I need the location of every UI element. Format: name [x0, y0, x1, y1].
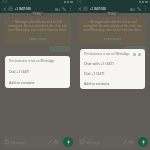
staticText: Today	[33, 12, 42, 16]
staticText: Message	[11, 140, 25, 144]
staticText: • Messages and calls are end-to-end encr…	[7, 20, 68, 32]
staticText: This business is not on WhatsApp	[84, 52, 130, 56]
button[interactable]: Call	[61, 6, 67, 12]
button[interactable]: Back	[2, 6, 8, 12]
button[interactable]: Video call	[129, 6, 135, 12]
staticText: Learn more	[104, 37, 122, 41]
button[interactable]: More options	[143, 6, 148, 11]
button[interactable]: Voice message	[63, 137, 73, 147]
button[interactable]: Message	[2, 136, 61, 148]
button[interactable]: Back	[77, 6, 83, 12]
staticText: This business is not on WhatsApp	[9, 59, 55, 63]
staticText: 9:41	[2, 0, 8, 4]
staticText: • Messages and calls are end-to-end encr…	[82, 20, 143, 32]
staticText: +1 (347) 555	[90, 7, 106, 11]
other: Attach	[123, 140, 127, 144]
button[interactable]: Call	[136, 6, 142, 12]
button[interactable]: More options	[68, 6, 73, 11]
staticText: +1 (347) 555	[15, 7, 31, 11]
button[interactable]: Dial +1 (347)	[84, 71, 105, 76]
button[interactable]: Video call	[54, 6, 60, 12]
staticText: 9:41	[77, 0, 83, 4]
button[interactable]: Voice message	[138, 137, 148, 147]
staticText: Learn more	[29, 37, 47, 41]
button[interactable]: Chat with +1 (347)	[84, 61, 114, 66]
button[interactable]: Dial +1 (347)	[9, 69, 30, 74]
button[interactable]: Add to contacts	[9, 80, 35, 85]
button[interactable]: Add to contacts	[84, 81, 110, 86]
staticText: Today	[108, 12, 117, 16]
other: Attach	[48, 140, 52, 144]
staticText: Message	[86, 140, 100, 144]
button[interactable]: Message	[77, 136, 136, 148]
